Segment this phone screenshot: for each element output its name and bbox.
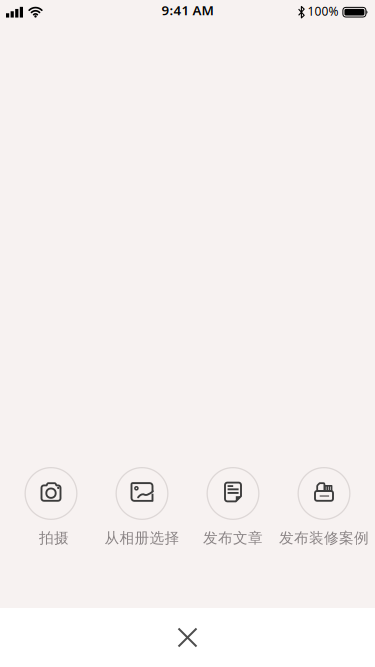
button[interactable]: 发布装修案例 xyxy=(278,467,369,547)
staticText: 100% xyxy=(307,3,338,19)
button[interactable]: 拍摄 xyxy=(5,467,96,547)
staticText: 发布文章 xyxy=(203,529,263,547)
staticText: 拍摄 xyxy=(39,529,69,547)
staticText: 从相册选择 xyxy=(104,529,179,547)
staticText: 9:41 AM xyxy=(161,1,213,19)
button[interactable]: 发布文章 xyxy=(187,467,278,547)
button[interactable]: 从相册选择 xyxy=(96,467,187,547)
staticText: 发布装修案例 xyxy=(279,529,369,547)
button[interactable]: Close xyxy=(0,608,375,667)
